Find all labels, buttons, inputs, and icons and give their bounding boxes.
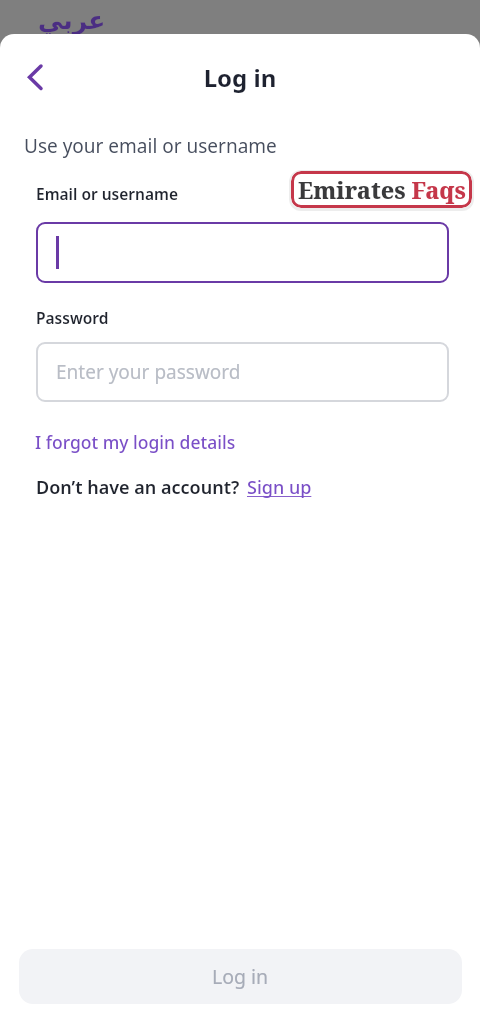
staticText: عربي (38, 6, 106, 35)
staticText: Use your email or username (24, 133, 277, 159)
button[interactable]: Sign up (247, 475, 312, 500)
staticText: Enter your password (56, 359, 241, 385)
staticText: Emirates Faqs (298, 174, 466, 205)
button[interactable] (36, 222, 449, 283)
staticText: Log in (212, 963, 269, 990)
button[interactable] (18, 54, 54, 90)
staticText: Email or username (36, 183, 178, 204)
button[interactable]: I forgot my login details (35, 430, 236, 454)
staticText: Password (36, 307, 109, 328)
staticText: Don’t have an account? (36, 475, 240, 500)
staticText: Log in (0, 61, 480, 94)
button[interactable]: Log in (19, 949, 462, 1004)
button[interactable]: Enter your password (36, 342, 449, 402)
